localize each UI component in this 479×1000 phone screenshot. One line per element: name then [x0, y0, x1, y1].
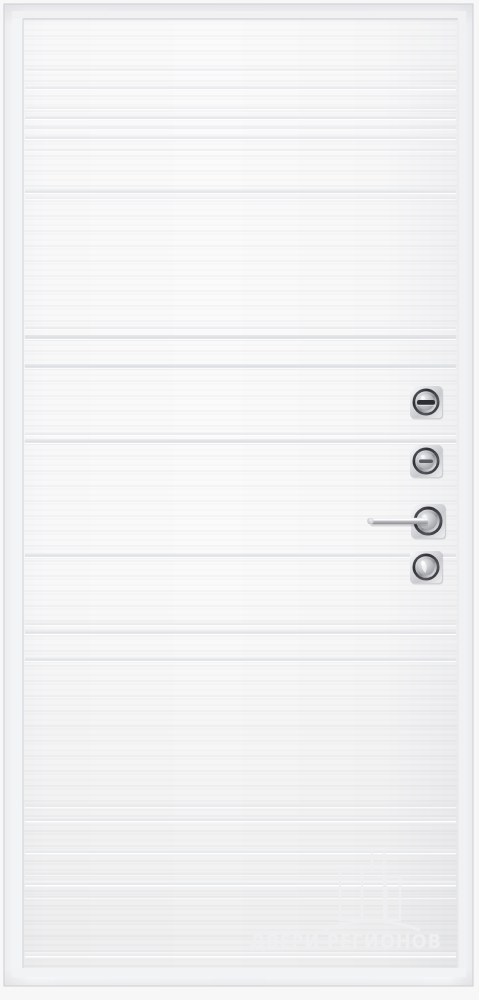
button[interactable]: Lock cylinder — [410, 445, 443, 478]
staticText: ДВЕРИ РЕГИОНОВ — [250, 928, 442, 954]
button[interactable]: Door handle — [368, 504, 445, 539]
button[interactable]: Upper lock — [410, 386, 443, 419]
other: White steel entrance door product photo — [0, 0, 479, 1000]
button[interactable]: Deadbolt — [410, 551, 443, 584]
